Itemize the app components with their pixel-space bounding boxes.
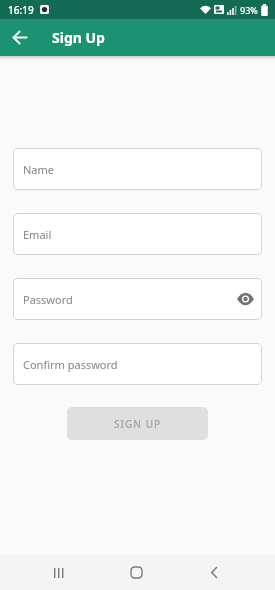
staticText: Name — [23, 162, 55, 177]
button[interactable]: Confirm password — [13, 343, 262, 385]
staticText: Confirm password — [23, 357, 118, 372]
staticText: 93% — [240, 4, 258, 16]
button[interactable] — [116, 562, 156, 583]
staticText: Email — [23, 227, 52, 242]
staticText: Password — [23, 292, 73, 307]
button[interactable]: Email — [13, 213, 262, 255]
button[interactable]: SIGN UP — [67, 407, 208, 440]
button[interactable] — [39, 562, 79, 583]
button[interactable]: Name — [13, 148, 262, 190]
staticText: Sign Up — [52, 28, 105, 47]
button[interactable] — [194, 562, 234, 583]
button[interactable] — [235, 289, 255, 309]
staticText: SIGN UP — [114, 417, 162, 431]
staticText: 16:19 — [8, 3, 34, 17]
button[interactable] — [0, 19, 40, 56]
button[interactable]: Password — [13, 278, 262, 320]
